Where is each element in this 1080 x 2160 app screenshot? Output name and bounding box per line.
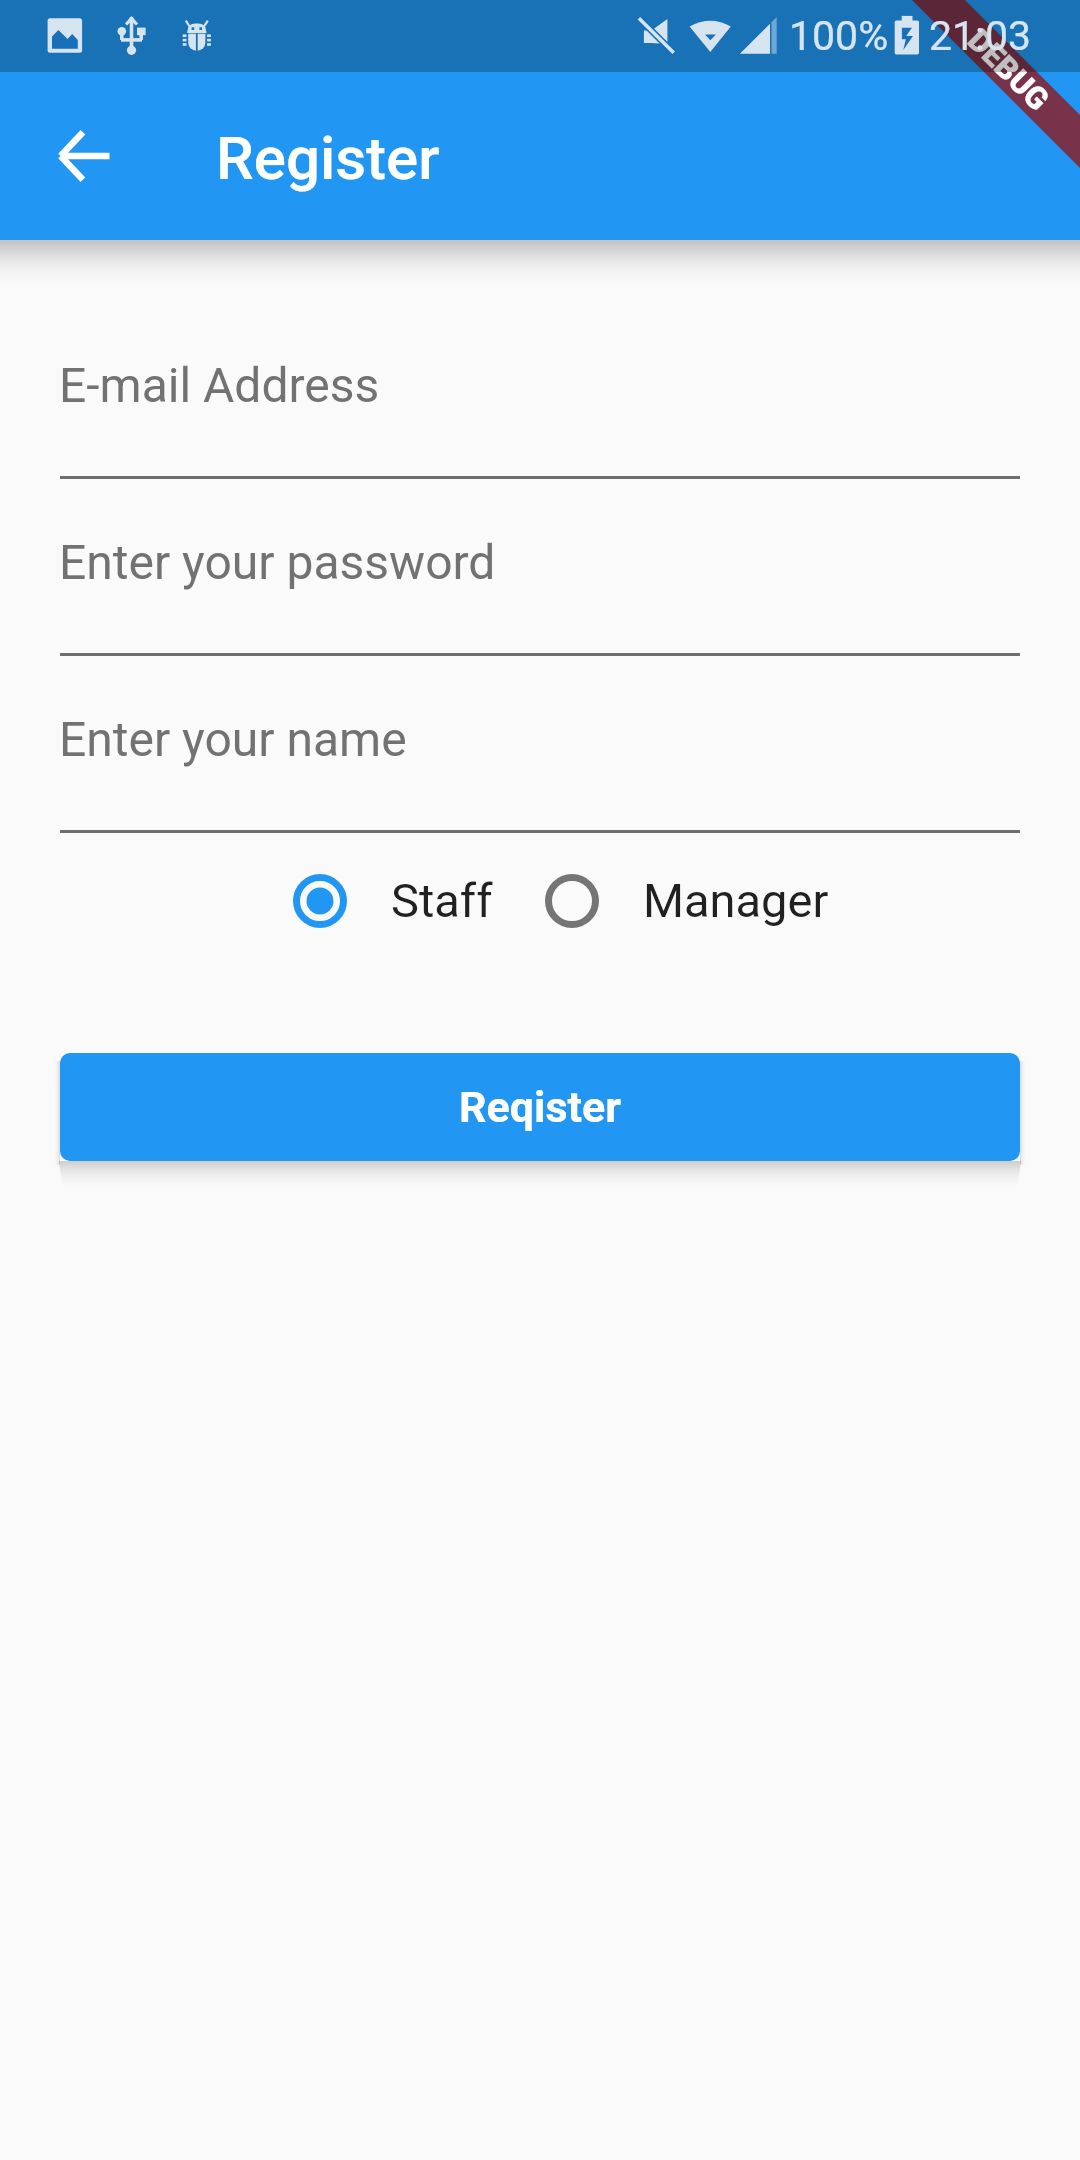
staticText: Manager	[643, 873, 829, 928]
button[interactable]: Manager	[545, 873, 829, 928]
button[interactable]: Staff	[293, 873, 493, 928]
staticText: Reqister	[459, 1082, 622, 1132]
staticText: Enter your password	[59, 534, 496, 590]
button[interactable]: Reqister	[60, 1053, 1020, 1161]
staticText: Register	[216, 123, 440, 193]
staticText: DEBUG	[961, 22, 1057, 118]
staticText: Enter your name	[59, 711, 407, 767]
staticText: 21:03	[929, 12, 1032, 60]
button[interactable]: Back	[37, 108, 133, 204]
staticText: Staff	[391, 873, 493, 928]
staticText: E-mail Address	[59, 357, 380, 413]
staticText: 100%	[789, 12, 889, 60]
